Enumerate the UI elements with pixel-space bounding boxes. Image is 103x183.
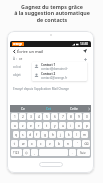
staticText: s — [22, 133, 24, 137]
button[interactable]: 9 — [75, 113, 82, 120]
staticText: r — [38, 124, 40, 128]
button[interactable]: w — [19, 140, 27, 147]
button[interactable]: k — [65, 131, 72, 138]
staticText: 5 — [46, 115, 48, 119]
button[interactable]: ⇧ — [11, 140, 18, 147]
button[interactable]: Contact 1 — [32, 62, 87, 71]
button[interactable]: f — [34, 131, 40, 138]
button[interactable]: u — [59, 122, 66, 129]
button[interactable]: 6 — [51, 113, 58, 120]
staticText: . — [72, 151, 73, 155]
button[interactable]: z — [19, 122, 26, 129]
staticText: u — [62, 124, 64, 128]
button[interactable]: c — [37, 140, 45, 147]
staticText: z — [22, 124, 24, 128]
staticText: k — [68, 133, 70, 137]
staticText: n — [67, 142, 69, 146]
button[interactable] — [39, 149, 68, 156]
staticText: contact2@orange.fr — [41, 76, 68, 80]
staticText: Ce — [21, 107, 25, 111]
button[interactable]: ?123 — [11, 149, 22, 156]
staticText: À : — [13, 57, 17, 61]
button[interactable]: g — [41, 131, 48, 138]
button[interactable]: 1 — [11, 113, 18, 120]
staticText: i — [70, 124, 71, 128]
button[interactable]: Cette — [61, 105, 86, 112]
staticText: Suiv. — [80, 151, 87, 155]
button[interactable]: Plus de suggestions — [86, 105, 91, 112]
staticText: ⌫ — [84, 142, 89, 146]
button[interactable]: t — [43, 122, 50, 129]
staticText: e — [30, 124, 32, 128]
button[interactable]: s — [20, 131, 26, 138]
button[interactable]: Cet — [36, 105, 61, 112]
button[interactable]: o — [75, 122, 82, 129]
button[interactable]: m — [81, 131, 88, 138]
staticText: Envoyé depuis l'application Mail Orange — [13, 87, 70, 91]
staticText: 6 — [54, 115, 56, 119]
button[interactable]: p — [83, 122, 90, 129]
button[interactable]: y — [51, 122, 58, 129]
button[interactable]: l — [73, 131, 80, 138]
staticText: ' — [77, 142, 78, 146]
staticText: cc/cci — [13, 65, 22, 69]
button[interactable]: 5 — [43, 113, 50, 120]
staticText: v — [49, 142, 51, 146]
button[interactable]: 8 — [67, 113, 74, 120]
staticText: 9 — [78, 115, 80, 119]
button[interactable]: Retour — [12, 49, 17, 54]
staticText: Contact 2 — [41, 72, 56, 76]
button[interactable]: , — [31, 149, 38, 156]
staticText: d — [29, 133, 31, 137]
button[interactable]: e — [27, 122, 34, 129]
button[interactable]: h — [49, 131, 56, 138]
staticText: 2 — [22, 115, 24, 119]
button[interactable]: ☺ — [23, 149, 30, 156]
staticText: m — [83, 133, 86, 137]
button[interactable]: Envoyer — [82, 48, 88, 54]
button[interactable]: 0 — [83, 113, 90, 120]
button[interactable]: . — [69, 149, 76, 156]
staticText: 7 — [62, 115, 64, 119]
staticText: ce — [19, 57, 23, 61]
staticText: objet — [13, 73, 21, 77]
staticText: 1 — [14, 115, 16, 119]
button[interactable]: a — [11, 122, 18, 129]
button[interactable]: r — [35, 122, 42, 129]
staticText: ☺ — [25, 151, 28, 154]
button[interactable]: Suiv. — [77, 149, 90, 156]
staticText: , — [34, 151, 35, 155]
button[interactable]: Ce — [10, 105, 36, 112]
button[interactable]: i — [67, 122, 74, 129]
staticText: Cette — [70, 107, 78, 111]
staticText: q — [15, 133, 17, 137]
button[interactable]: 7 — [59, 113, 66, 120]
staticText: contact@domaine.fr — [41, 67, 68, 71]
staticText: g — [44, 133, 46, 137]
staticText: c — [40, 142, 42, 146]
button[interactable]: q — [13, 131, 19, 138]
button[interactable]: d — [27, 131, 33, 138]
staticText: 4 — [38, 115, 40, 119]
button[interactable]: x — [28, 140, 36, 147]
button[interactable]: v — [46, 140, 54, 147]
button[interactable]: 4 — [35, 113, 42, 120]
staticText: h — [52, 133, 54, 137]
button[interactable]: 3 — [27, 113, 34, 120]
button[interactable]: n — [64, 140, 72, 147]
staticText: Écrire un mail — [17, 49, 44, 54]
staticText: t — [46, 124, 48, 128]
staticText: Contact 1 — [41, 63, 56, 67]
staticText: y — [54, 124, 56, 128]
button[interactable]: j — [57, 131, 64, 138]
button[interactable]: ⌫ — [82, 140, 90, 147]
button[interactable]: ' — [73, 140, 81, 147]
button[interactable]: Contact 2 — [32, 71, 87, 80]
staticText: 14:30 — [80, 42, 89, 46]
button[interactable]: Ajouter un contact — [83, 57, 88, 62]
staticText: w — [22, 142, 25, 146]
button[interactable]: b — [55, 140, 63, 147]
button[interactable]: 2 — [19, 113, 26, 120]
staticText: o — [78, 124, 80, 128]
staticText: 0 — [86, 115, 88, 119]
